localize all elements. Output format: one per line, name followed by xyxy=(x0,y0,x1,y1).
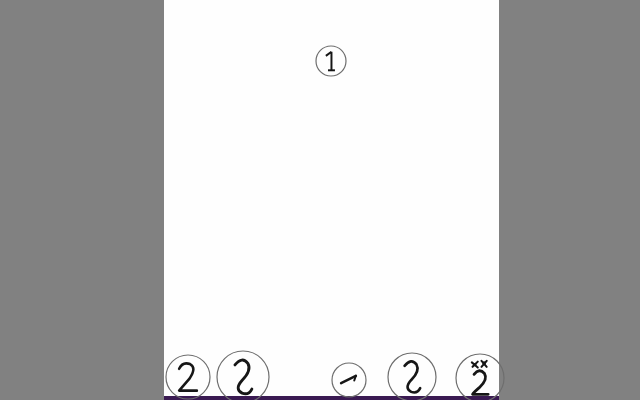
button[interactable]: Handwritten two cursive xyxy=(213,347,273,400)
button[interactable]: Handwritten two xyxy=(162,351,214,400)
button[interactable]: Handwritten one xyxy=(328,359,370,400)
button[interactable]: Handwritten two variant xyxy=(384,349,440,400)
button[interactable]: Handwritten two annotated xyxy=(452,350,508,400)
button[interactable]: Digit one node xyxy=(312,42,350,80)
